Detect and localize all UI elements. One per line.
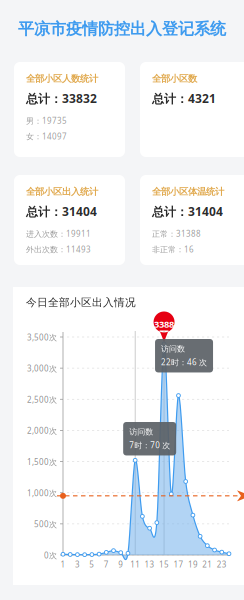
staticText: 23 [217,559,227,570]
staticText: 7 [104,559,109,570]
staticText: 22时：46 次 [161,357,207,367]
staticText: 访问数 [129,427,153,437]
staticText: 3,500次 [27,332,57,343]
staticText: 外出次数：11493 [26,244,91,255]
staticText: 进入次数：19911 [26,228,91,239]
staticText: 女：14097 [26,131,67,142]
staticText: 今日全部小区出入情况 [26,296,136,309]
staticText: 1,000次 [27,488,57,498]
staticText: 5 [89,559,94,570]
button[interactable]: 全部小区人数统计 [14,62,125,157]
staticText: 全部小区人数统计 [26,73,98,84]
staticText: 0次 [44,550,57,561]
staticText: 19 [188,559,198,570]
staticText: 全部小区数 [152,73,197,84]
staticText: 访问数 [161,344,185,354]
staticText: 2,000次 [27,425,57,436]
staticText: 15 [159,559,169,570]
staticText: 13 [145,559,155,570]
staticText: 3,000次 [27,363,57,374]
staticText: 3388 [154,318,174,330]
staticText: 总计：33832 [26,90,97,106]
staticText: 总计：31404 [152,203,223,219]
staticText: 500次 [34,519,57,529]
staticText: 1,500次 [27,457,57,467]
staticText: 21 [202,559,212,570]
staticText: 正常：31388 [152,228,201,239]
staticText: 非正常：16 [152,244,194,255]
staticText: 17 [173,559,183,570]
staticText: 全部小区体温统计 [152,186,224,197]
staticText: 2,500次 [27,394,57,405]
button[interactable]: 全部小区出入统计 [14,175,125,265]
button[interactable]: 全部小区体温统计 [140,175,244,265]
staticText: 平凉市疫情防控出入登记系统 [18,19,226,39]
staticText: 男：19735 [26,115,67,126]
staticText: 7时：70 次 [129,440,170,450]
button[interactable]: 全部小区数 [140,62,244,157]
staticText: 总计：4321 [152,90,216,106]
staticText: 全部小区出入统计 [26,186,98,197]
staticText: 1 [60,559,65,570]
staticText: 11 [130,559,140,570]
staticText: 3 [75,559,80,570]
staticText: 总计：31404 [26,203,97,219]
staticText: 9 [118,559,123,570]
